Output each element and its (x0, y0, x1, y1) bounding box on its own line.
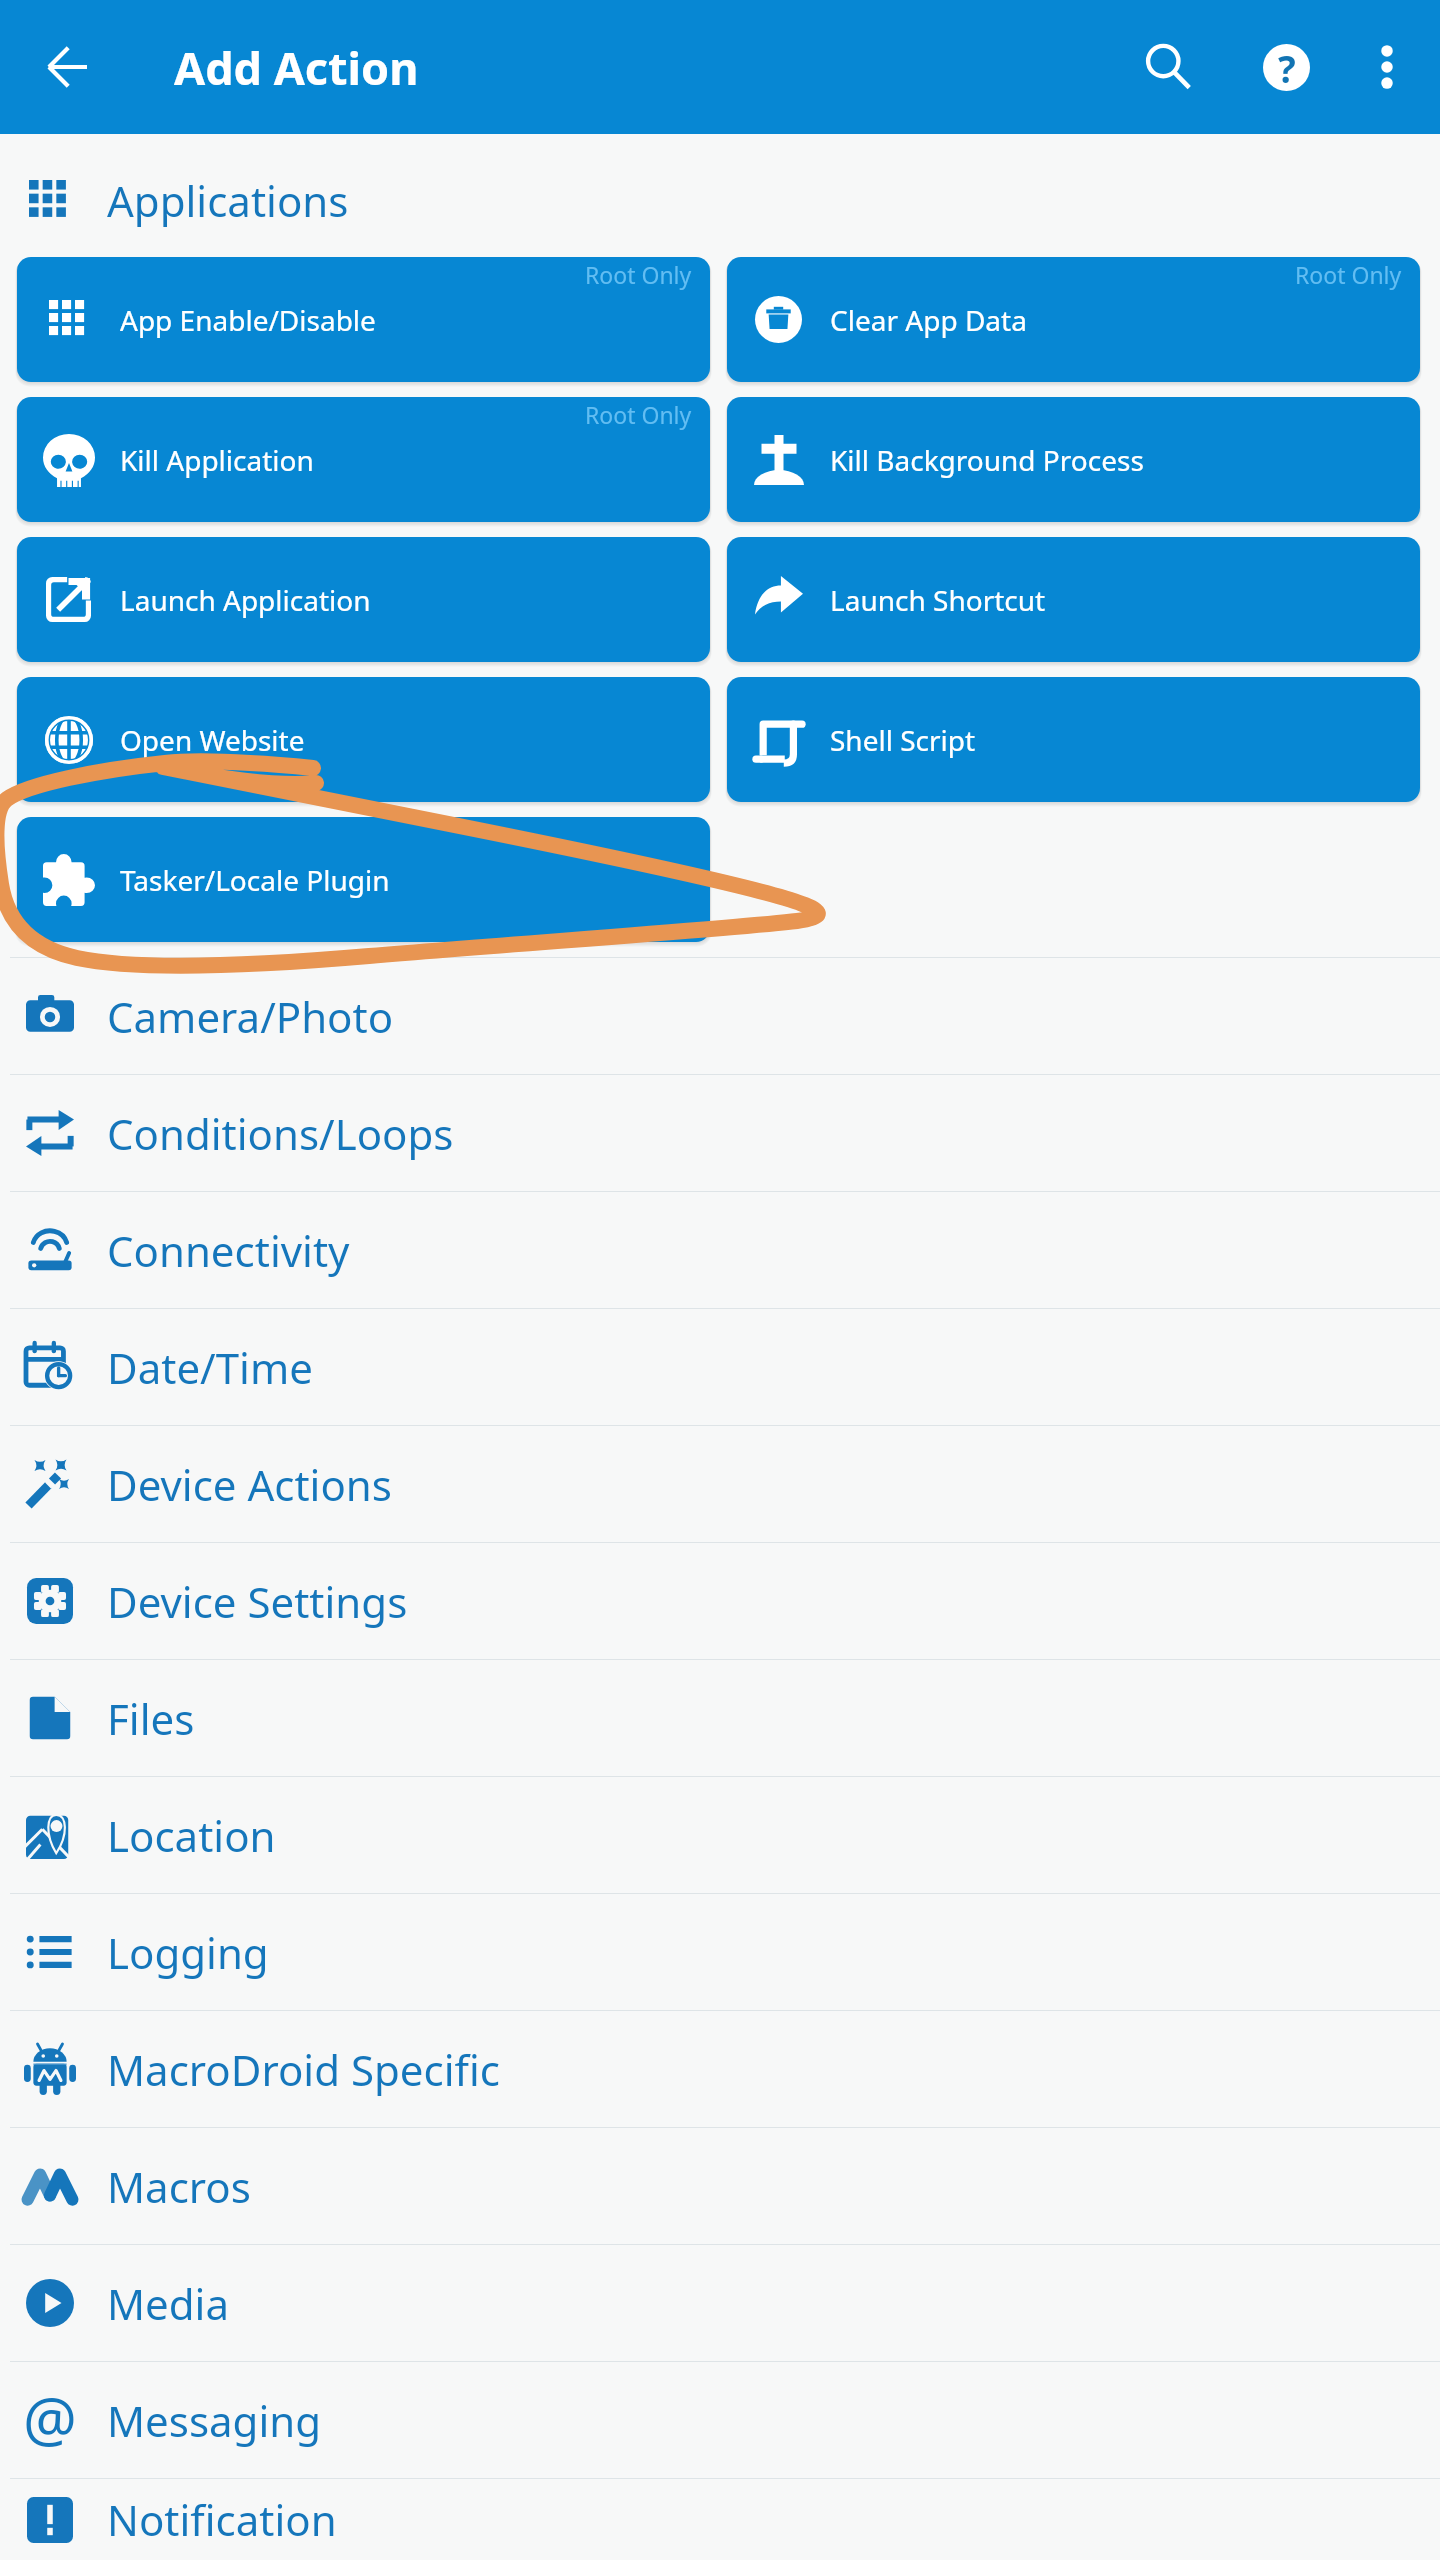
button[interactable]: Root Only (727, 257, 1420, 382)
staticText: Messaging (107, 2392, 322, 2449)
staticText: Kill Application (120, 441, 314, 479)
button[interactable]: Help (1238, 0, 1334, 134)
staticText: App Enable/Disable (120, 301, 376, 339)
staticText: Root Only (585, 259, 692, 290)
staticText: Device Settings (107, 1573, 408, 1630)
staticText: Media (107, 2275, 230, 2332)
button[interactable]: Search (1100, 0, 1238, 134)
staticText: Date/Time (107, 1339, 313, 1396)
button[interactable]: Media (0, 2245, 1440, 2361)
button[interactable]: Root Only (17, 397, 710, 522)
staticText: Macros (107, 2158, 251, 2215)
staticText: Open Website (120, 721, 305, 759)
staticText: Add Action (174, 37, 419, 98)
button[interactable]: Logging (0, 1894, 1440, 2010)
staticText: Root Only (585, 399, 692, 430)
staticText: Root Only (1295, 259, 1402, 290)
button[interactable]: Kill Background Process (727, 397, 1420, 522)
button[interactable]: Applications (0, 134, 1440, 257)
staticText: Tasker/Locale Plugin (120, 861, 390, 899)
button[interactable]: Tasker/Locale Plugin (17, 817, 710, 942)
staticText: ? (1278, 44, 1296, 90)
button[interactable]: Launch Shortcut (727, 537, 1420, 662)
staticText: MacroDroid Specific (107, 2041, 500, 2098)
staticText: Logging (107, 1924, 269, 1981)
button[interactable]: Location (0, 1777, 1440, 1893)
staticText: Clear App Data (830, 301, 1027, 339)
staticText: Device Actions (107, 1456, 392, 1513)
button[interactable]: Date/Time (0, 1309, 1440, 1425)
staticText: Location (107, 1807, 276, 1864)
button[interactable]: Camera/Photo (0, 958, 1440, 1074)
button[interactable]: More options (1334, 0, 1440, 134)
staticText: Camera/Photo (107, 988, 394, 1045)
staticText: Launch Shortcut (830, 581, 1046, 619)
button[interactable]: Connectivity (0, 1192, 1440, 1308)
button[interactable]: Device Settings (0, 1543, 1440, 1659)
staticText: Connectivity (107, 1222, 350, 1279)
button[interactable]: Macros (0, 2128, 1440, 2244)
button[interactable]: MacroDroid Specific (0, 2011, 1440, 2127)
button[interactable]: Files (0, 1660, 1440, 1776)
staticText: Launch Application (120, 581, 371, 619)
button[interactable]: @ (0, 2362, 1440, 2478)
button[interactable]: Conditions/Loops (0, 1075, 1440, 1191)
button[interactable]: Root Only (17, 257, 710, 382)
button[interactable]: Open Website (17, 677, 710, 802)
staticText: Applications (107, 172, 349, 229)
staticText: Files (107, 1690, 195, 1747)
button[interactable]: Device Actions (0, 1426, 1440, 1542)
staticText: Kill Background Process (830, 441, 1144, 479)
button[interactable]: Notification (0, 2479, 1440, 2560)
staticText: Notification (107, 2491, 337, 2548)
staticText: @ (23, 2377, 77, 2457)
staticText: Shell Script (830, 721, 976, 759)
button[interactable]: Launch Application (17, 537, 710, 662)
button[interactable]: Navigate up (0, 0, 134, 134)
button[interactable]: Shell Script (727, 677, 1420, 802)
staticText: Conditions/Loops (107, 1105, 454, 1162)
